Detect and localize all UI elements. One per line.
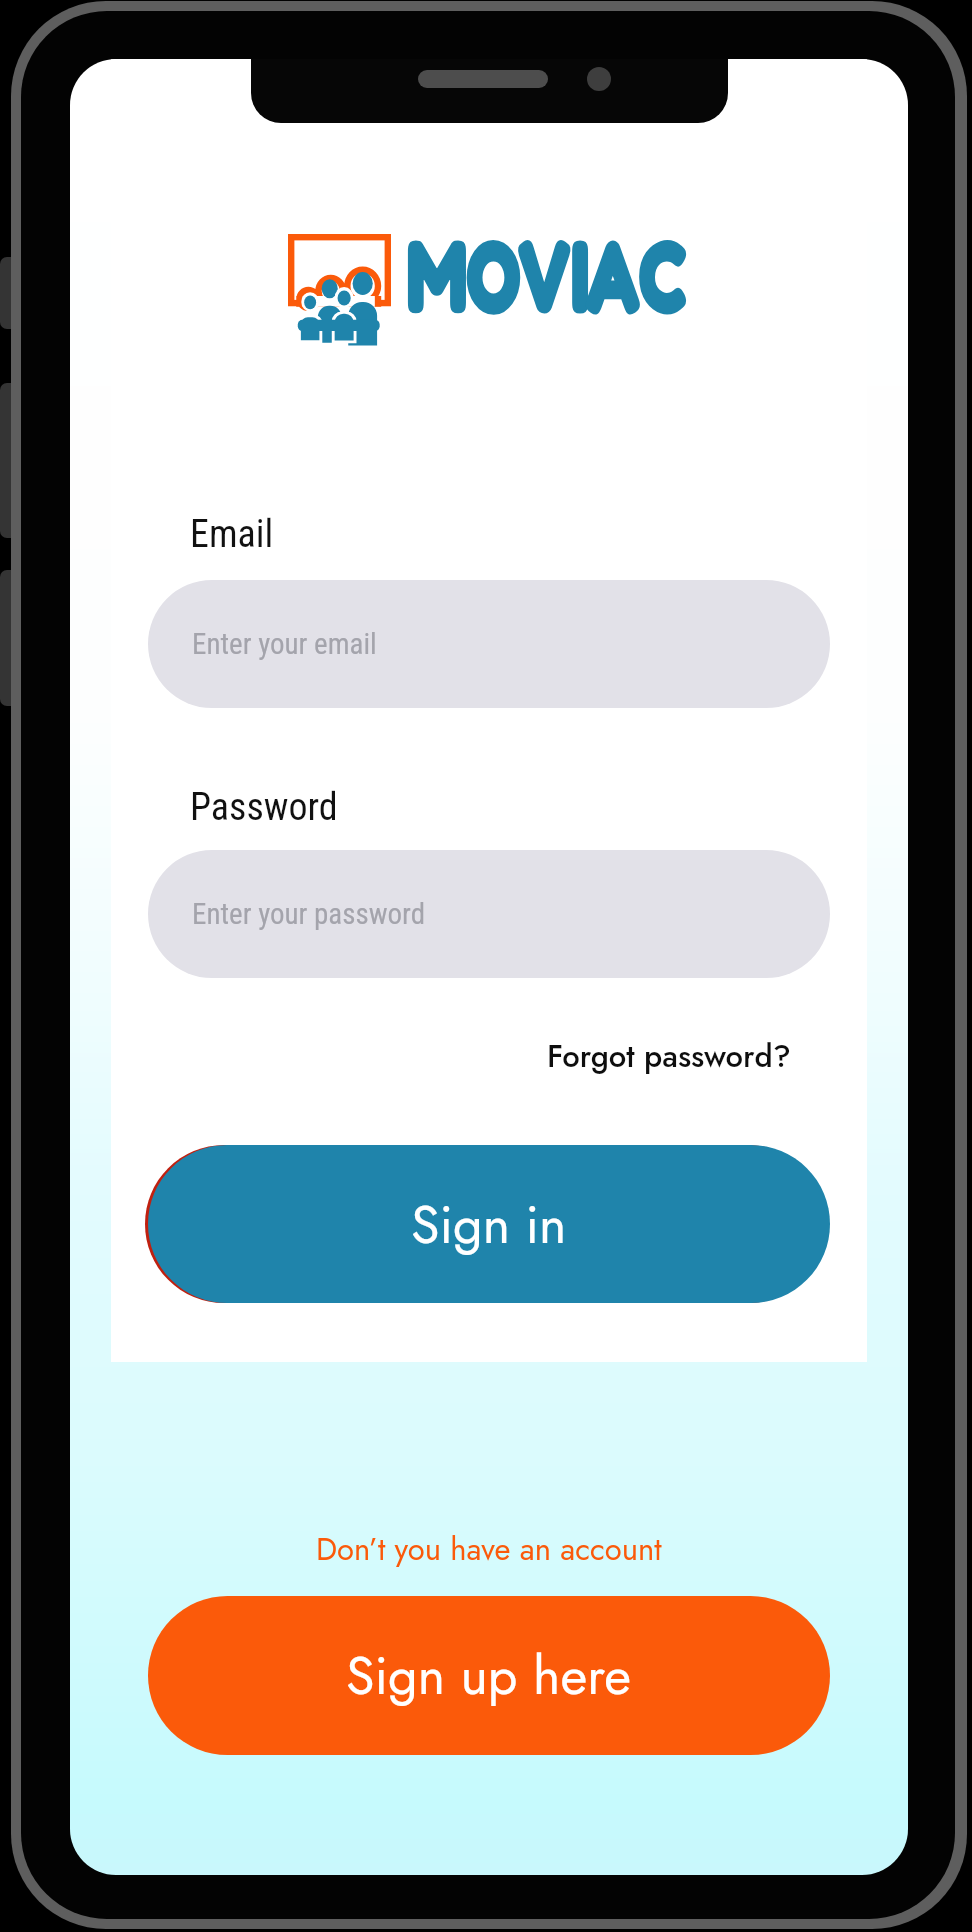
staticText: Enter your password [192,897,426,931]
staticText: Sign in [411,1187,567,1262]
staticText: MOVIAC [407,214,686,335]
staticText: Forgot password? [547,1034,791,1079]
staticText: Password [190,785,338,830]
button[interactable]: Forgot password? [391,1034,791,1079]
staticText: Enter your email [192,627,377,661]
button[interactable]: Sign up here [148,1596,830,1755]
button[interactable]: Enter your email [148,580,830,708]
staticText: Sign up here [346,1638,632,1713]
button[interactable]: Sign in [148,1145,830,1303]
button[interactable]: Enter your password [148,850,830,978]
staticText: Don’t you have an account [316,1527,662,1572]
staticText: Email [190,512,274,557]
